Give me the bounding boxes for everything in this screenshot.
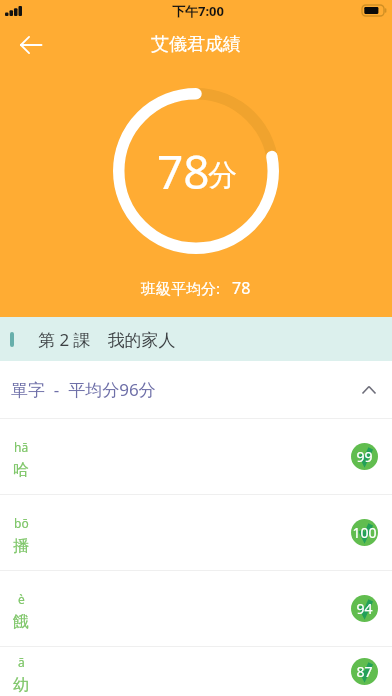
staticText: è <box>18 591 25 607</box>
staticText: ā <box>18 654 25 670</box>
staticText: 幼 <box>13 675 29 695</box>
staticText: hā <box>14 439 29 455</box>
staticText: bō <box>14 515 29 531</box>
button[interactable]: ā <box>0 647 392 696</box>
staticText: 下午7:00 <box>172 2 224 20</box>
staticText: 班級平均分: <box>141 278 221 298</box>
staticText: 艾儀君成績 <box>151 33 241 56</box>
staticText: 餓 <box>13 612 29 632</box>
staticText: 78 <box>157 140 210 203</box>
button[interactable]: Back <box>9 23 53 67</box>
staticText: 78 <box>232 277 251 299</box>
staticText: 單字 - 平均分96分 <box>11 378 156 401</box>
staticText: 分 <box>208 157 237 194</box>
button[interactable]: Collapse section <box>347 368 391 412</box>
staticText: 播 <box>13 536 29 556</box>
staticText: 哈 <box>13 460 29 480</box>
button[interactable]: hā <box>0 419 392 494</box>
staticText: 第 2 課 我的家人 <box>38 328 176 351</box>
button[interactable]: 單字 - 平均分96分 <box>0 361 392 418</box>
staticText: 87 <box>356 662 373 681</box>
button[interactable]: è <box>0 571 392 646</box>
staticText: 99 <box>356 447 373 466</box>
staticText: 94 <box>356 599 373 618</box>
staticText: 100 <box>352 523 377 542</box>
button[interactable]: bō <box>0 495 392 570</box>
button[interactable]: 第 2 課 我的家人 <box>0 317 392 361</box>
